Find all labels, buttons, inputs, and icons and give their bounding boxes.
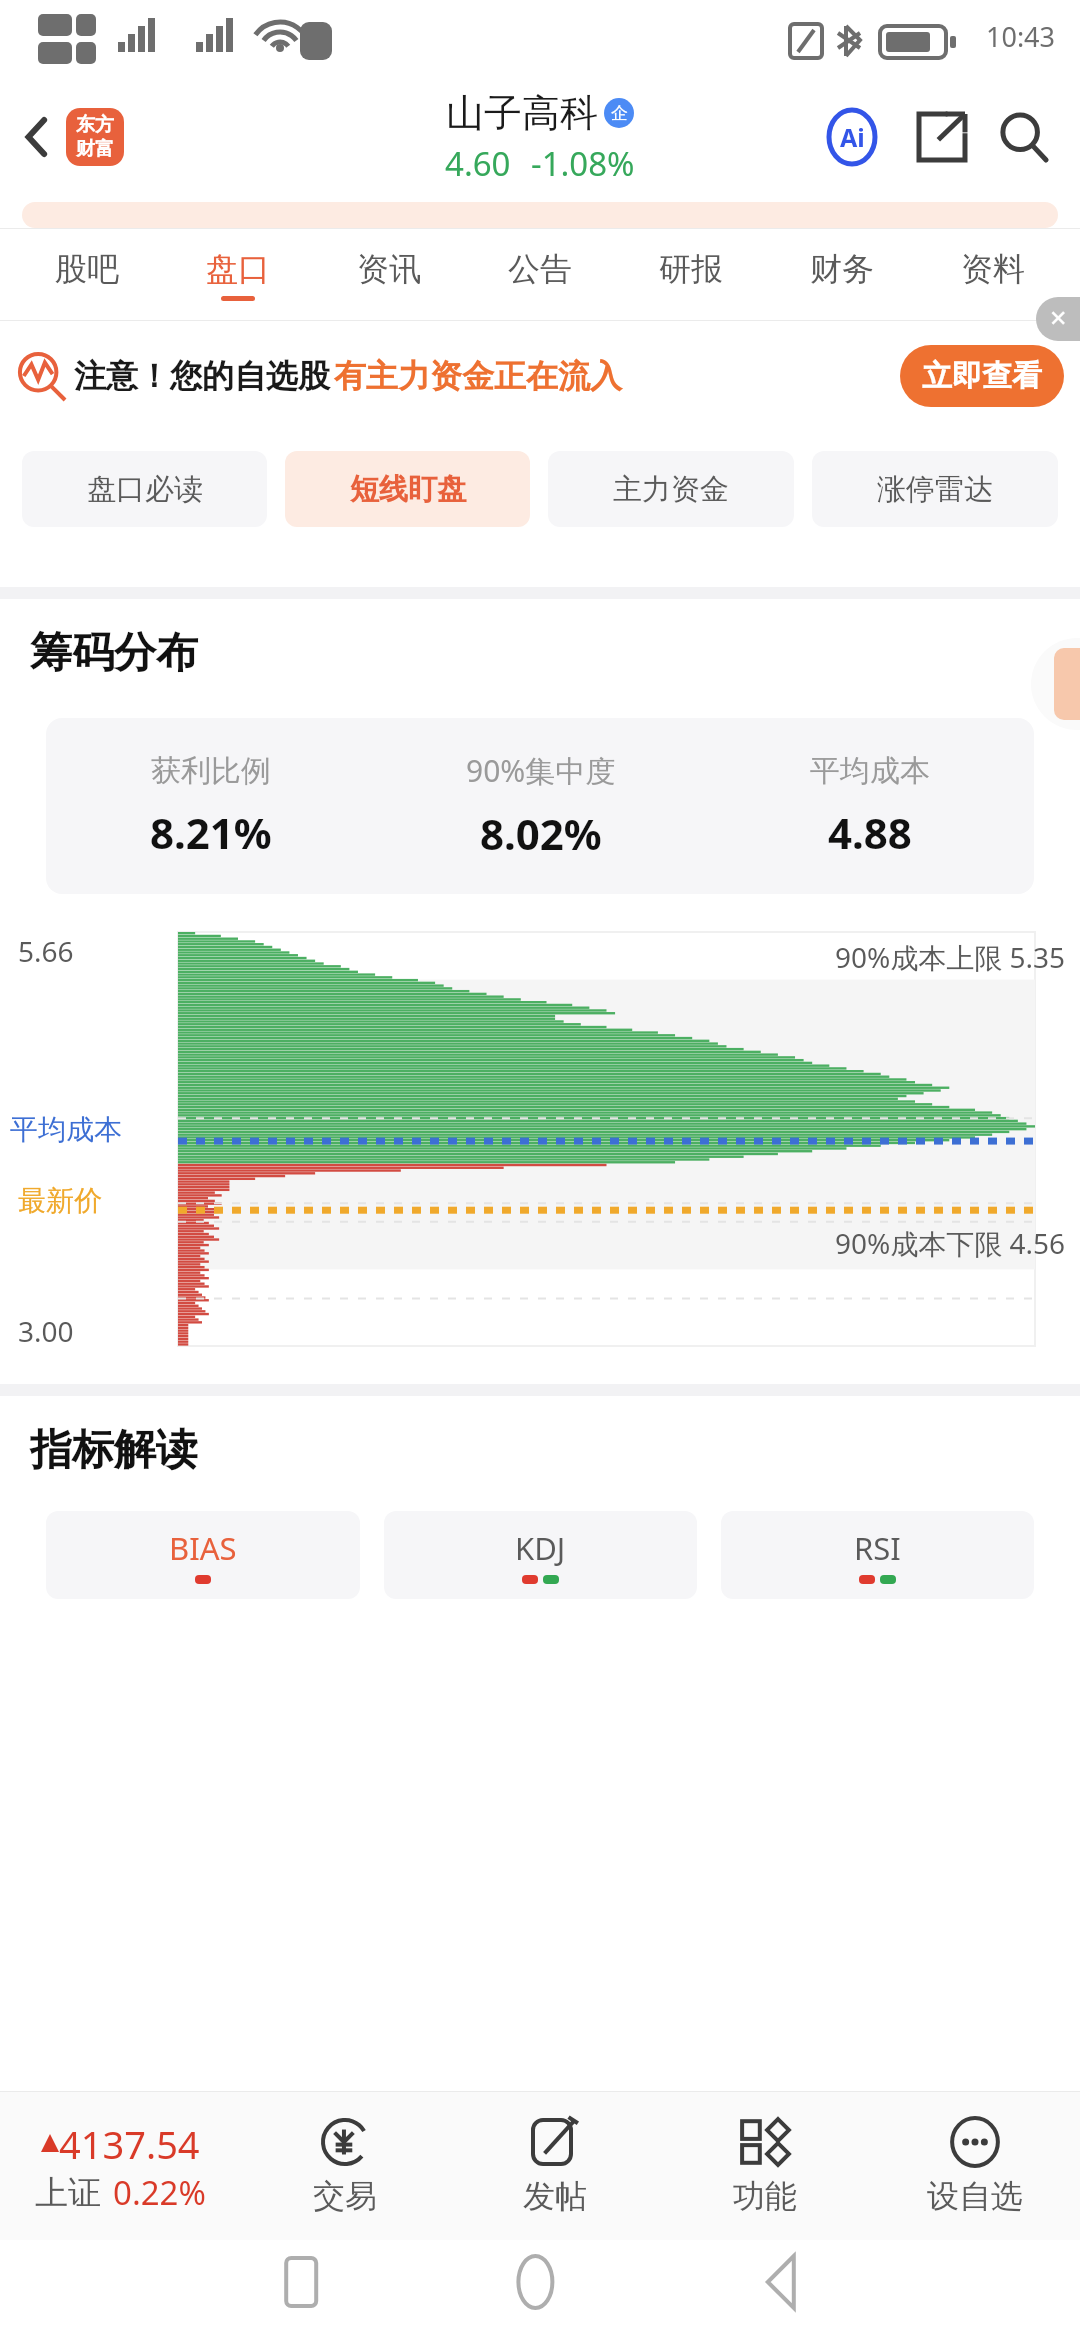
staticText: 90%成本上限 5.35 — [835, 938, 1066, 976]
staticText: 股吧 — [55, 249, 119, 289]
button[interactable]: 短线盯盘 — [285, 451, 530, 527]
staticText: 资料 — [961, 249, 1025, 289]
button[interactable]: Widget — [1022, 629, 1080, 739]
button[interactable]: RSI — [721, 1511, 1034, 1599]
button[interactable]: AI — [816, 101, 888, 173]
staticText: 平均成本 — [810, 752, 930, 790]
staticText: ✕ — [1049, 306, 1068, 332]
staticText: KDJ — [515, 1527, 566, 1569]
staticText: 10:43 — [986, 18, 1056, 55]
button[interactable]: 4137.54 — [0, 2092, 240, 2240]
button[interactable]: 山子高科 — [445, 89, 635, 186]
staticText: 0.22% — [113, 2170, 206, 2215]
button[interactable]: KDJ — [384, 1511, 697, 1599]
staticText: 90%集中度 — [466, 750, 616, 791]
staticText: 资讯 — [357, 249, 421, 289]
button[interactable]: 盘口 — [162, 229, 313, 321]
staticText: 设自选 — [927, 2176, 1023, 2216]
button[interactable]: 主力资金 — [548, 451, 794, 527]
staticText: 盘口 — [206, 249, 270, 289]
button[interactable]: 立即查看 — [922, 345, 1042, 407]
staticText: 山子高科 — [446, 89, 598, 137]
staticText: 平均成本 — [10, 1112, 122, 1147]
staticText: 公告 — [508, 249, 572, 289]
button[interactable]: 获利比例 — [46, 718, 1034, 894]
staticText: 4137.54 — [59, 2118, 200, 2170]
button[interactable]: 涨停雷达 — [812, 451, 1058, 527]
button[interactable]: 研报 — [615, 229, 766, 321]
staticText: 4.88 — [828, 804, 912, 861]
button[interactable]: 股吧 — [12, 229, 162, 321]
staticText: 有主力资金正在流入 — [334, 356, 622, 396]
staticText: BIAS — [169, 1527, 237, 1569]
staticText: 研报 — [659, 249, 723, 289]
staticText: 8.02% — [480, 805, 602, 862]
staticText: 企 — [611, 103, 628, 124]
staticText: 短线盯盘 — [350, 471, 466, 508]
staticText: 注意！您的自选股 — [74, 356, 330, 396]
button[interactable]: Search — [988, 101, 1060, 173]
staticText: 上证 — [35, 2172, 101, 2214]
button[interactable]: 注意！您的自选股 — [18, 321, 1064, 431]
button[interactable]: East Money — [66, 108, 124, 166]
staticText: 4.60 — [445, 141, 511, 186]
staticText: 功能 — [733, 2176, 797, 2216]
staticText: 立即查看 — [922, 357, 1042, 395]
button[interactable]: 设自选 — [870, 2092, 1080, 2240]
button[interactable]: Back — [6, 105, 70, 169]
button[interactable]: 功能 — [660, 2092, 870, 2240]
staticText: 指标解读 — [30, 1424, 198, 1477]
staticText: 5.66 — [18, 932, 74, 970]
staticText: 筹码分布 — [30, 627, 198, 680]
staticText: 财务 — [810, 249, 874, 289]
button[interactable]: Share — [906, 101, 978, 173]
staticText: 东方 — [76, 113, 114, 137]
staticText: -1.08% — [531, 141, 635, 186]
button[interactable]: 财务 — [766, 229, 917, 321]
staticText: 发帖 — [523, 2176, 587, 2216]
button[interactable]: 交易 — [240, 2092, 450, 2240]
staticText: 90%成本下限 4.56 — [835, 1224, 1066, 1262]
staticText: RSI — [854, 1527, 901, 1569]
staticText: 8.21% — [150, 804, 272, 861]
staticText: 主力资金 — [613, 471, 729, 508]
staticText: Ai — [840, 120, 865, 154]
staticText: 涨停雷达 — [877, 471, 993, 508]
button[interactable]: 资讯 — [313, 229, 464, 321]
button[interactable]: 资料 — [917, 229, 1068, 321]
button[interactable]: 发帖 — [450, 2092, 660, 2240]
staticText: 盘口必读 — [87, 471, 203, 508]
staticText: 3.00 — [18, 1312, 74, 1350]
button[interactable]: Close — [1036, 297, 1080, 341]
button[interactable]: 公告 — [464, 229, 615, 321]
button[interactable]: 盘口必读 — [22, 451, 267, 527]
staticText: 交易 — [313, 2176, 377, 2216]
staticText: 财富 — [76, 137, 114, 161]
button[interactable]: BIAS — [46, 1511, 360, 1599]
staticText: 最新价 — [18, 1183, 102, 1218]
staticText: 获利比例 — [151, 752, 271, 790]
